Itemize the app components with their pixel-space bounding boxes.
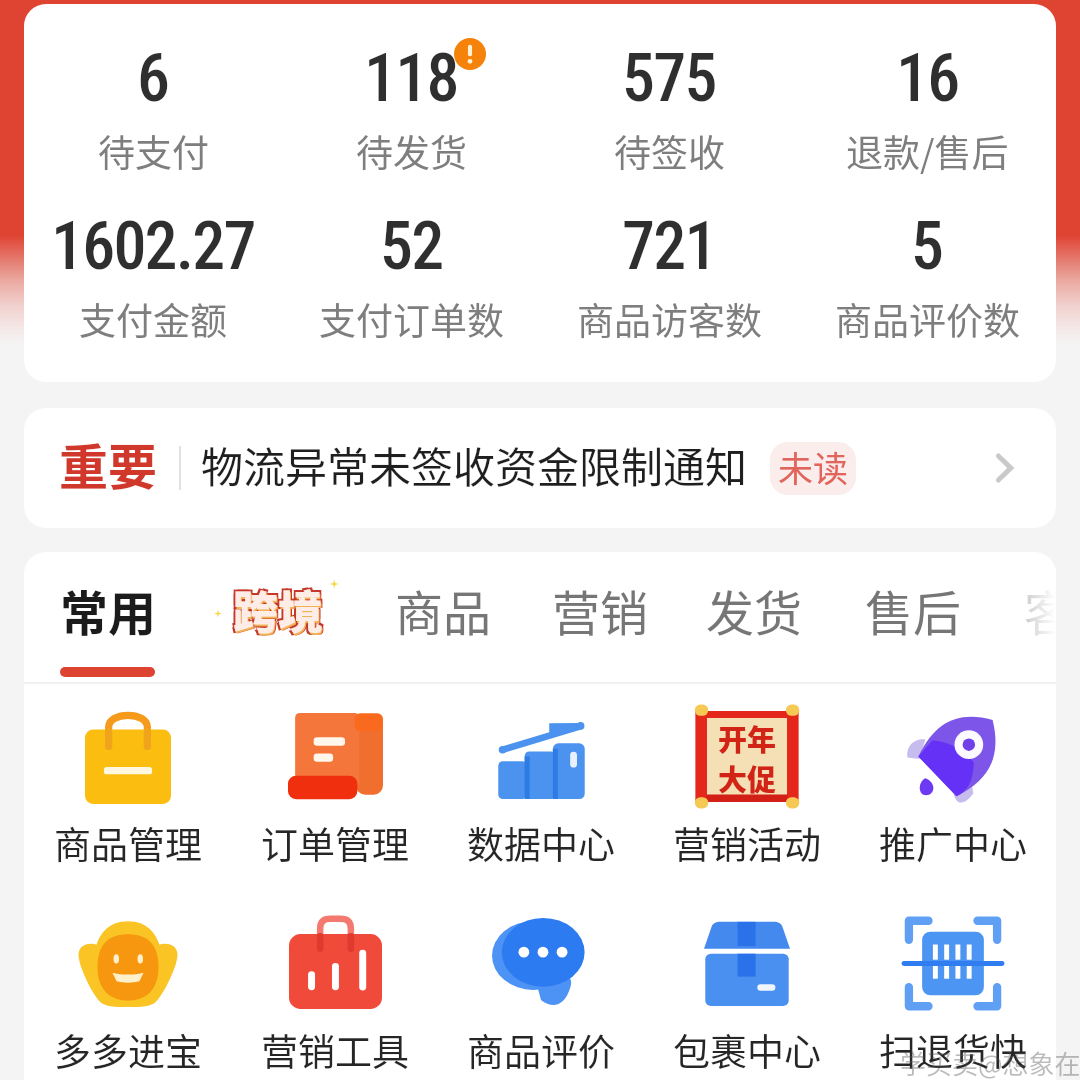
staticText: 待签收 xyxy=(614,124,725,178)
staticText: 营销工具 xyxy=(261,1023,409,1077)
staticText: 721 xyxy=(622,208,716,285)
button[interactable]: 推广中心 xyxy=(850,697,1056,870)
button[interactable]: 118 xyxy=(282,4,540,184)
staticText: 大促 xyxy=(718,757,777,799)
staticText: 物流异常未签收资金限制通知 xyxy=(201,434,748,495)
staticText: 跨境 xyxy=(233,577,324,642)
button[interactable]: 6 xyxy=(24,4,282,184)
button[interactable]: 包裹中心 xyxy=(644,904,850,1077)
staticText: 跨境 xyxy=(235,579,326,644)
button[interactable]: 营销工具 xyxy=(231,904,438,1077)
button[interactable]: 数据中心 xyxy=(438,697,644,870)
button[interactable]: 721 xyxy=(540,172,798,352)
staticText: 118 xyxy=(364,40,458,117)
button[interactable]: 跨境 xyxy=(203,571,353,647)
staticText: 商品管理 xyxy=(54,816,202,870)
staticText: 商品 xyxy=(395,575,492,643)
staticText: 商品评价 xyxy=(467,1023,615,1077)
staticText: 售后 xyxy=(865,575,962,643)
button[interactable]: 发货 xyxy=(706,565,803,653)
staticText: 重要 xyxy=(59,428,158,499)
staticText: 支付订单数 xyxy=(319,292,504,346)
button[interactable]: 52 xyxy=(282,172,540,352)
staticText: 退款/售后 xyxy=(846,124,1009,178)
staticText: 待支付 xyxy=(98,124,209,178)
staticText: 开年 xyxy=(718,717,777,759)
button[interactable]: 订单管理 xyxy=(231,697,438,870)
button[interactable]: 多多进宝 xyxy=(24,904,231,1077)
button[interactable]: 商品评价 xyxy=(438,904,644,1077)
button[interactable]: 商品 xyxy=(395,565,492,653)
staticText: 5 xyxy=(911,208,943,285)
staticText: 待发货 xyxy=(356,124,467,178)
button[interactable]: 16 xyxy=(798,4,1056,184)
button[interactable]: 客 xyxy=(1024,565,1056,653)
staticText: 1602.27 xyxy=(51,208,255,285)
staticText: 营销 xyxy=(552,575,649,643)
staticText: 跨境 xyxy=(234,579,325,644)
button[interactable]: 商品管理 xyxy=(24,697,231,870)
staticText: 支付金额 xyxy=(79,292,227,346)
staticText: 商品评价数 xyxy=(835,292,1020,346)
staticText: 16 xyxy=(896,40,959,117)
button[interactable]: 1602.27 xyxy=(24,172,282,352)
button[interactable]: 扫退货快 xyxy=(850,904,1056,1077)
staticText: 52 xyxy=(380,208,443,285)
staticText: 跨境 xyxy=(231,579,322,644)
staticText: 575 xyxy=(622,40,716,117)
button[interactable]: 营销 xyxy=(552,565,649,653)
button[interactable]: 查看详情 xyxy=(981,445,1027,491)
staticText: 包裹中心 xyxy=(673,1023,821,1077)
staticText: 学买卖@想象在飞 xyxy=(900,1044,1080,1080)
staticText: 6 xyxy=(137,40,169,117)
staticText: 商品访客数 xyxy=(577,292,762,346)
button[interactable]: 售后 xyxy=(865,565,962,653)
staticText: 跨境 xyxy=(231,575,322,640)
button[interactable]: 5 xyxy=(798,172,1056,352)
staticText: 扫退货快 xyxy=(879,1023,1027,1077)
staticText: 推广中心 xyxy=(879,816,1027,870)
staticText: 多多进宝 xyxy=(54,1023,202,1077)
staticText: 跨境 xyxy=(235,575,326,640)
staticText: 客 xyxy=(1024,575,1056,643)
staticText: 发货 xyxy=(706,575,803,643)
staticText: 营销活动 xyxy=(673,816,821,870)
staticText: 常用 xyxy=(60,575,157,643)
button[interactable]: 重要 xyxy=(24,408,1056,528)
button[interactable]: 常用 xyxy=(60,565,157,653)
staticText: 订单管理 xyxy=(261,816,409,870)
button[interactable]: 575 xyxy=(540,4,798,184)
staticText: 未读 xyxy=(778,442,849,492)
button[interactable]: 开年 xyxy=(644,697,850,870)
staticText: 数据中心 xyxy=(467,816,615,870)
